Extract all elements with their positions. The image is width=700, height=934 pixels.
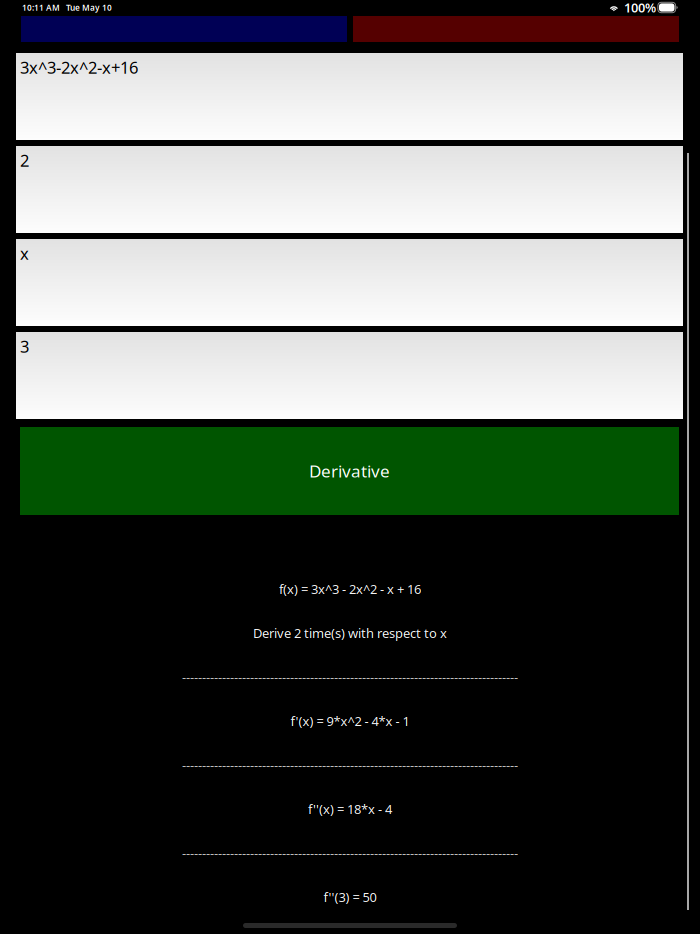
staticText: f(x) = 3x^3 - 2x^2 - x + 16 — [279, 580, 421, 598]
button[interactable]: Derivative — [20, 427, 679, 515]
staticText: ----------------------------------------… — [182, 844, 518, 862]
staticText: f''(x) = 18*x - 4 — [308, 800, 392, 818]
staticText: f'(x) = 9*x^2 - 4*x - 1 — [290, 712, 409, 730]
staticText: ----------------------------------------… — [182, 668, 518, 686]
button[interactable]: x — [16, 239, 683, 326]
staticText: 2 — [20, 149, 29, 171]
staticText: ----------------------------------------… — [182, 756, 518, 774]
button[interactable]: 2 — [16, 146, 683, 233]
staticText: x — [20, 242, 29, 264]
staticText: 10:11 AM — [22, 2, 60, 13]
staticText: Tue May 10 — [66, 2, 112, 13]
button[interactable]: 3 — [16, 332, 683, 419]
staticText: Derive 2 time(s) with respect to x — [253, 624, 447, 642]
staticText: 3x^3-2x^2-x+16 — [20, 56, 138, 78]
staticText: 100% — [624, 0, 656, 16]
staticText: 3 — [20, 335, 29, 357]
staticText: Derivative — [309, 459, 390, 483]
staticText: f''(3) = 50 — [323, 888, 376, 906]
button[interactable]: 3x^3-2x^2-x+16 — [16, 53, 683, 140]
